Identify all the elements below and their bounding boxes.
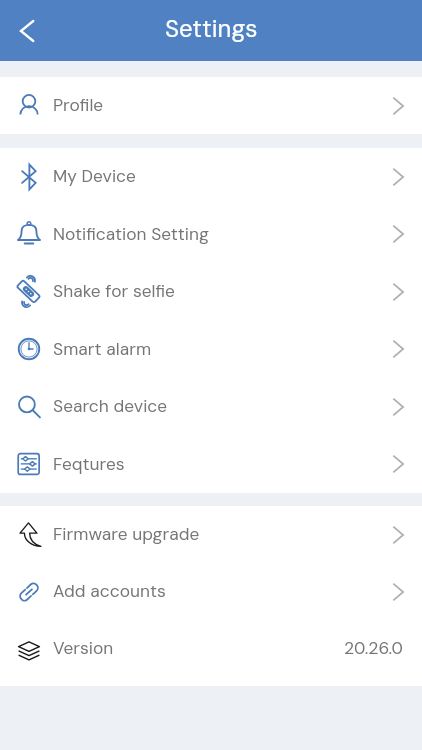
staticText: Settings <box>165 13 258 44</box>
button[interactable]: Notification Setting <box>0 205 422 263</box>
staticText: Firmware upgrade <box>53 523 200 546</box>
button[interactable]: Shake for selfie <box>0 263 422 320</box>
staticText: Shake for selfie <box>53 280 175 303</box>
staticText: Version <box>53 637 114 660</box>
staticText: Profile <box>53 94 104 117</box>
button[interactable]: Profile <box>0 77 422 134</box>
staticText: Smart alarm <box>53 338 152 361</box>
button[interactable]: Version <box>0 620 422 677</box>
staticText: Notification Setting <box>53 223 209 246</box>
staticText: Add accounts <box>53 580 166 603</box>
staticText: My Device <box>53 165 136 188</box>
button[interactable]: Firmware upgrade <box>0 506 422 563</box>
button[interactable]: Back <box>0 0 52 61</box>
staticText: Feqtures <box>53 453 125 476</box>
staticText: 20.26.0 <box>344 637 403 660</box>
button[interactable]: Smart alarm <box>0 320 422 378</box>
button[interactable]: Feqtures <box>0 435 422 493</box>
button[interactable]: My Device <box>0 148 422 205</box>
button[interactable]: Add accounts <box>0 563 422 620</box>
button[interactable]: Search device <box>0 378 422 435</box>
staticText: Search device <box>53 395 168 418</box>
